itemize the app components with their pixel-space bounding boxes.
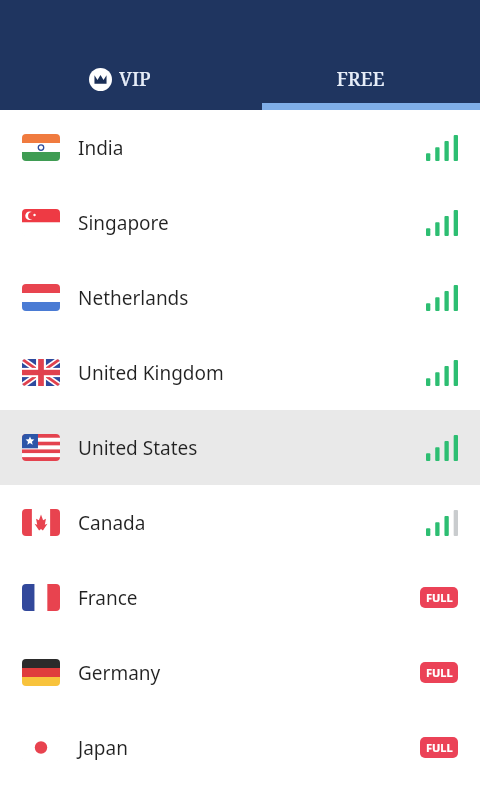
staticText: FULL xyxy=(426,590,453,605)
staticText: Canada xyxy=(78,510,146,536)
staticText: VIP xyxy=(119,66,151,92)
other: Signal strength xyxy=(426,285,458,311)
button[interactable]: Germany xyxy=(0,635,480,710)
button[interactable]: FREE xyxy=(240,48,480,110)
staticText: France xyxy=(78,585,138,611)
staticText: India xyxy=(78,135,124,161)
other: Signal strength xyxy=(426,360,458,386)
staticText: FULL xyxy=(426,740,453,755)
staticText: FULL xyxy=(426,665,453,680)
staticText: Japan xyxy=(78,735,128,761)
button[interactable]: Canada xyxy=(0,485,480,560)
staticText: United Kingdom xyxy=(78,360,224,386)
button[interactable]: India xyxy=(0,110,480,185)
button[interactable]: VIP xyxy=(0,48,240,110)
other: Signal strength xyxy=(426,210,458,236)
button[interactable]: United States xyxy=(0,410,480,485)
staticText: FREE xyxy=(336,66,385,92)
staticText: Netherlands xyxy=(78,285,189,311)
other: Signal strength xyxy=(426,135,458,161)
staticText: Singapore xyxy=(78,210,169,236)
button[interactable]: France xyxy=(0,560,480,635)
other: Signal strength xyxy=(426,510,458,536)
button[interactable]: United Kingdom xyxy=(0,335,480,410)
button[interactable]: Netherlands xyxy=(0,260,480,335)
other: Signal strength xyxy=(426,435,458,461)
button[interactable]: Singapore xyxy=(0,185,480,260)
button[interactable]: Japan xyxy=(0,710,480,785)
staticText: United States xyxy=(78,435,198,461)
staticText: Germany xyxy=(78,660,161,686)
